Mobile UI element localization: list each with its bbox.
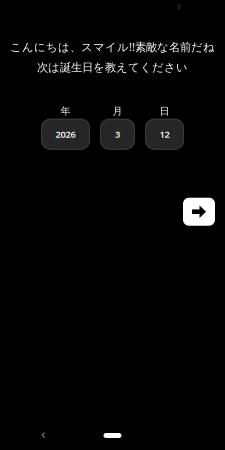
staticText: 次は誕生日を教えてください [37,60,188,75]
staticText: 日 [159,105,169,117]
button[interactable]: 日 [145,105,184,150]
staticText: こんにちは、スマイル!!素敵な名前だね [10,39,215,54]
staticText: 2026 [55,128,75,141]
button[interactable]: 月 [100,105,135,150]
button[interactable]: 次へ [183,198,215,226]
staticText: 3 [115,128,120,141]
staticText: 年 [60,105,70,117]
staticText: 12 [159,128,169,141]
button[interactable]: 年 [41,105,90,150]
staticText: 月 [112,105,122,117]
button[interactable]: 戻る [30,423,56,447]
